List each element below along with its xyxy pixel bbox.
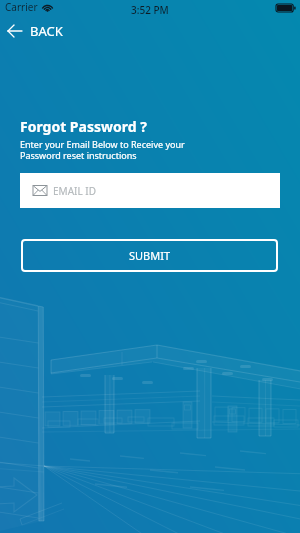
- staticText: SUBMIT: [129, 248, 171, 263]
- staticText: 3:52 PM: [131, 3, 169, 17]
- button[interactable]: EMAIL ID: [20, 173, 280, 208]
- staticText: Carrier: [5, 0, 38, 14]
- staticText: Enter your Email Below to Receive your P…: [20, 138, 185, 161]
- staticText: EMAIL ID: [53, 184, 96, 198]
- staticText: BACK: [30, 22, 63, 40]
- button[interactable]: Back: [7, 21, 63, 41]
- staticText: Forgot Password ?: [20, 117, 147, 136]
- button[interactable]: SUBMIT: [21, 239, 278, 272]
- other: Back: [7, 25, 22, 37]
